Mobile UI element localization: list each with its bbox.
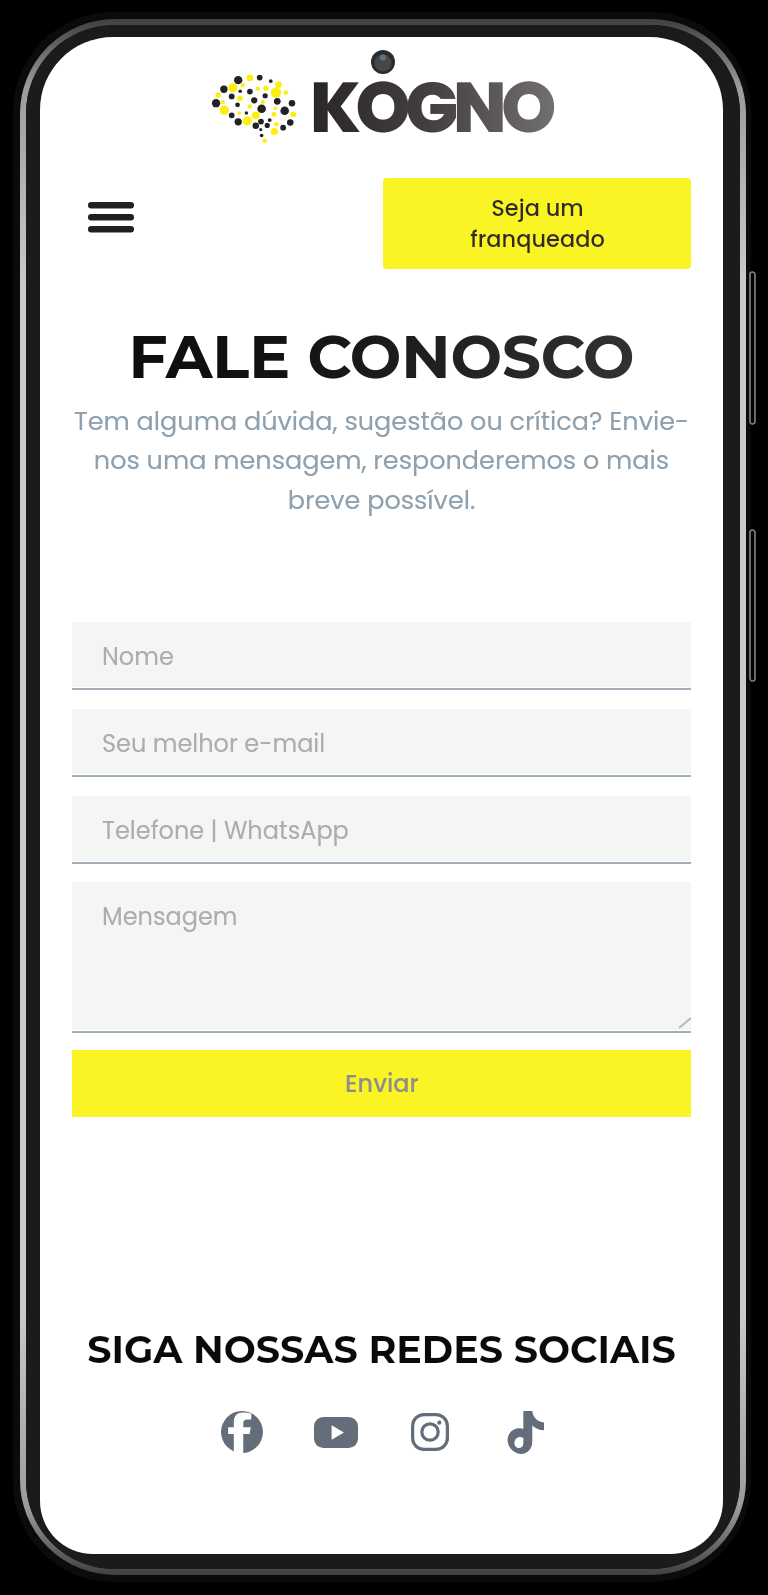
staticText: Seu melhor e-mail xyxy=(102,727,326,761)
staticText: Telefone | WhatsApp xyxy=(102,814,349,848)
button[interactable]: Facebook xyxy=(214,1404,270,1460)
button[interactable]: Enviar xyxy=(72,1050,691,1117)
staticText: Nome xyxy=(102,640,174,674)
button[interactable]: Telefone | WhatsApp xyxy=(72,796,691,861)
staticText: Tem alguma dúvida, sugestão ou crítica? … xyxy=(50,403,713,518)
staticText: SIGA NOSSAS REDES SOCIAIS xyxy=(40,1326,723,1372)
staticText: Mensagem xyxy=(102,900,238,934)
button[interactable]: Open navigation menu xyxy=(64,177,140,245)
staticText: KOGNO xyxy=(310,58,552,156)
staticText: Seja um franqueado xyxy=(470,192,605,255)
button[interactable]: Instagram xyxy=(402,1404,458,1460)
button[interactable]: Nome xyxy=(72,622,691,687)
button[interactable]: Seu melhor e-mail xyxy=(72,709,691,774)
button[interactable]: Mensagem xyxy=(72,882,691,1030)
button[interactable]: Seja um franqueado xyxy=(383,178,691,269)
button[interactable]: TikTok xyxy=(496,1404,552,1460)
staticText: Enviar xyxy=(345,1067,419,1101)
staticText: FALE CONOSCO xyxy=(40,319,723,393)
button[interactable]: YouTube xyxy=(308,1404,364,1460)
